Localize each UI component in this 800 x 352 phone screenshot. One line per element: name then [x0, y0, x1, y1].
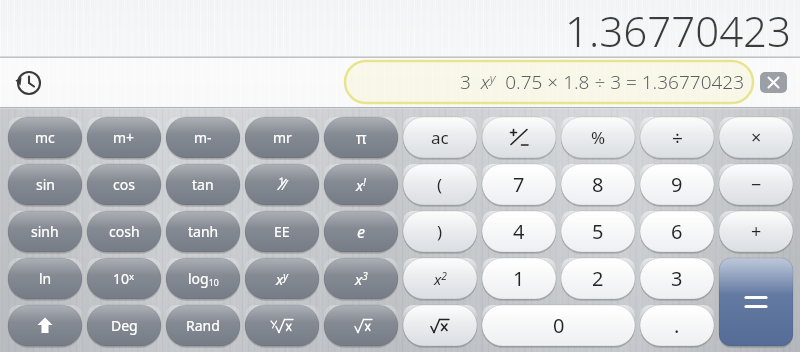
staticText: %: [591, 126, 606, 149]
button[interactable]: 5: [561, 211, 635, 252]
staticText: 2: [592, 265, 604, 292]
staticText: ¹⁄: [279, 175, 286, 194]
button[interactable]: x3: [324, 258, 398, 299]
staticText: mr: [273, 128, 292, 147]
staticText: EE: [274, 222, 290, 241]
staticText: tan: [192, 175, 214, 194]
button[interactable]: (: [403, 164, 477, 205]
button[interactable]: ln: [8, 258, 82, 299]
staticText: m+: [113, 128, 135, 147]
staticText: 1.36770423: [565, 2, 792, 56]
staticText: Rand: [186, 316, 220, 335]
button[interactable]: ): [403, 211, 477, 252]
staticText: tanh: [188, 222, 219, 241]
staticText: log10: [188, 269, 219, 289]
button[interactable]: Rand: [166, 305, 240, 346]
staticText: Deg: [111, 316, 138, 335]
staticText: 6: [671, 218, 683, 245]
staticText: π: [356, 127, 367, 149]
button[interactable]: .: [640, 305, 714, 346]
button[interactable]: 4: [482, 211, 556, 252]
button[interactable]: Shift: [8, 305, 82, 346]
button[interactable]: +: [719, 211, 793, 252]
staticText: 5: [592, 218, 604, 245]
button[interactable]: ac: [403, 117, 477, 158]
staticText: 3: [671, 265, 683, 292]
button[interactable]: cosh: [87, 211, 161, 252]
button[interactable]: 3 xy 0.75 × 1.8 ÷ 3 = 1.36770423: [353, 63, 745, 101]
button[interactable]: %: [561, 117, 635, 158]
button[interactable]: m-: [166, 117, 240, 158]
button[interactable]: Square root of x: [403, 305, 477, 346]
button[interactable]: Cube root of x: [324, 305, 398, 346]
button[interactable]: mc: [8, 117, 82, 158]
button[interactable]: 10x: [87, 258, 161, 299]
button[interactable]: m+: [87, 117, 161, 158]
staticText: ÷: [672, 125, 683, 151]
staticText: m-: [194, 128, 212, 147]
staticText: e: [357, 221, 365, 243]
staticText: ac: [431, 126, 449, 149]
button[interactable]: y-th root of x: [245, 305, 319, 346]
staticText: cosh: [109, 222, 140, 241]
staticText: ): [437, 220, 443, 243]
button[interactable]: 3: [640, 258, 714, 299]
button[interactable]: EE: [245, 211, 319, 252]
button[interactable]: ×: [719, 117, 793, 158]
staticText: 7: [513, 171, 525, 198]
button[interactable]: tan: [166, 164, 240, 205]
staticText: ln: [39, 269, 52, 288]
staticText: 9: [671, 171, 683, 198]
button[interactable]: mr: [245, 117, 319, 158]
button[interactable]: 1: [482, 258, 556, 299]
button[interactable]: sin: [8, 164, 82, 205]
button[interactable]: ¹⁄: [245, 164, 319, 205]
button[interactable]: ÷: [640, 117, 714, 158]
staticText: (: [437, 173, 443, 196]
button[interactable]: cos: [87, 164, 161, 205]
button[interactable]: x!: [324, 164, 398, 205]
staticText: cos: [113, 175, 135, 194]
staticText: sin: [36, 175, 55, 194]
staticText: 0: [553, 312, 565, 339]
button[interactable]: sinh: [8, 211, 82, 252]
button[interactable]: log10: [166, 258, 240, 299]
staticText: ×: [751, 125, 762, 150]
button[interactable]: Equals: [719, 258, 793, 346]
button[interactable]: x2: [403, 258, 477, 299]
button[interactable]: xy: [245, 258, 319, 299]
button[interactable]: Deg: [87, 305, 161, 346]
staticText: x3: [355, 269, 368, 289]
button[interactable]: tanh: [166, 211, 240, 252]
button[interactable]: Plus minus: [482, 117, 556, 158]
button[interactable]: 0: [482, 305, 635, 346]
staticText: 3 xy 0.75 × 1.8 ÷ 3 = 1.36770423: [460, 69, 745, 95]
staticText: −: [751, 172, 762, 197]
staticText: +: [751, 219, 762, 244]
staticText: 1: [513, 265, 525, 292]
button[interactable]: 6: [640, 211, 714, 252]
staticText: .: [674, 312, 680, 339]
staticText: x2: [434, 269, 447, 289]
staticText: sinh: [31, 222, 59, 241]
staticText: 10x: [113, 269, 135, 288]
staticText: xy: [276, 269, 289, 289]
staticText: mc: [35, 128, 55, 147]
button[interactable]: 7: [482, 164, 556, 205]
button[interactable]: 2: [561, 258, 635, 299]
button[interactable]: π: [324, 117, 398, 158]
button[interactable]: e: [324, 211, 398, 252]
button[interactable]: −: [719, 164, 793, 205]
staticText: 8: [592, 171, 604, 198]
button[interactable]: 9: [640, 164, 714, 205]
staticText: 4: [513, 218, 525, 245]
staticText: x!: [356, 175, 366, 195]
button[interactable]: 8: [561, 164, 635, 205]
